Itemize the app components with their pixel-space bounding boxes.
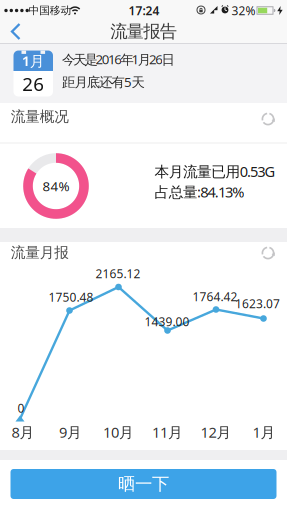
staticText: 流量月报 (11, 243, 69, 261)
staticText: 占总量:84.13% (154, 182, 244, 201)
staticText: 8月 (11, 422, 34, 442)
staticText: 中国移动 (28, 4, 71, 17)
staticText: 32% (231, 2, 255, 18)
staticText: 1439.00 (144, 313, 189, 329)
staticText: 0 (17, 400, 24, 416)
staticText: 1月 (252, 422, 275, 442)
staticText: 1623.07 (235, 295, 280, 311)
button[interactable] (257, 242, 279, 264)
staticText: 晒一下 (118, 473, 169, 495)
button[interactable] (257, 108, 279, 130)
staticText: 26 (22, 71, 44, 96)
staticText: 1750.48 (48, 289, 93, 305)
staticText: 9月 (59, 422, 82, 442)
button[interactable] (3, 20, 27, 42)
staticText: 本月流量已用0.53G (154, 161, 275, 181)
button[interactable]: 晒一下 (10, 469, 276, 499)
staticText: 距月底还有5天 (62, 73, 144, 91)
staticText: 1764.42 (192, 288, 237, 304)
staticText: 12月 (200, 422, 231, 442)
staticText: 今天是2016年1月26日 (62, 50, 174, 68)
staticText: 10月 (103, 422, 134, 442)
staticText: 2165.12 (95, 265, 140, 281)
staticText: 11月 (152, 422, 183, 442)
staticText: 流量概况 (11, 107, 69, 125)
staticText: 84% (42, 177, 69, 195)
staticText: 17:24 (128, 2, 159, 18)
staticText: 流量报告 (110, 21, 177, 42)
staticText: 1月 (22, 51, 45, 70)
